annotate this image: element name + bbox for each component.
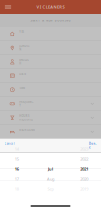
button[interactable]: HOURS REQUIRED (0, 111, 101, 125)
button[interactable]: FREQUENCY (0, 97, 101, 111)
staticText: 18 (15, 186, 19, 191)
staticText: 2021 (80, 166, 88, 171)
staticText: Aug (47, 176, 54, 181)
staticText: Sep (47, 186, 53, 191)
staticText: TIME (19, 86, 25, 93)
button[interactable]: YES (0, 27, 101, 41)
staticText: VI CLEANERS (36, 4, 64, 10)
staticText: FREQUENCY (19, 100, 34, 107)
staticText: 15 (15, 156, 19, 161)
button[interactable]: DATE (0, 69, 101, 83)
staticText: 14 (15, 146, 19, 151)
button[interactable]: LONDON (0, 41, 101, 55)
staticText: Cancel (4, 142, 14, 149)
staticText: START A NEW BOOKING (30, 19, 70, 22)
button[interactable]: TIME (0, 83, 101, 97)
staticText: YES (19, 30, 23, 37)
staticText: 17 (15, 176, 19, 181)
staticText: BEDROOMS (19, 128, 34, 135)
staticText: 2023 (80, 146, 88, 151)
button[interactable]: Cancel (1, 139, 17, 153)
staticText: 2020 (80, 176, 88, 181)
staticText: Jul (48, 166, 53, 171)
staticText: LONDON (19, 44, 30, 51)
button[interactable]: BEDROOMS (0, 125, 101, 139)
staticText: DATE (19, 72, 26, 79)
button[interactable]: ENGLISH (0, 55, 101, 69)
button[interactable]: Done (86, 139, 99, 153)
staticText: HOURS REQUIRED (19, 114, 33, 121)
staticText: Done (89, 142, 96, 149)
staticText: ENGLISH (19, 58, 29, 65)
staticText: 16 (15, 166, 19, 171)
button[interactable]: Menu (2, 1, 14, 13)
staticText: 2019 (80, 186, 88, 191)
staticText: 2022 (80, 156, 88, 161)
